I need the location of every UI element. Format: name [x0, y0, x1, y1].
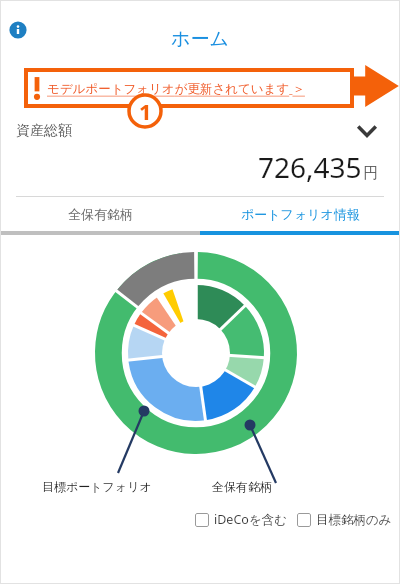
staticText: 円: [363, 164, 378, 183]
staticText: 726,435: [258, 148, 362, 186]
button[interactable]: ポートフォリオ情報: [200, 197, 400, 231]
staticText: ホーム: [171, 27, 229, 51]
button[interactable]: Expand: [352, 116, 382, 146]
staticText: 資産総額: [16, 122, 72, 140]
staticText: 目標銘柄のみ: [316, 512, 392, 528]
button[interactable]: Information: [8, 20, 28, 40]
other: Next: [340, 62, 400, 110]
staticText: 全保有銘柄: [212, 479, 272, 494]
button[interactable]: 全保有銘柄: [0, 197, 200, 231]
button[interactable]: iDeCoを含む: [195, 511, 287, 528]
staticText: 目標ポートフォリオ: [42, 479, 152, 494]
button[interactable]: 目標銘柄のみ: [297, 512, 392, 528]
staticText: ポートフォリオ情報: [241, 206, 360, 222]
staticText: 1: [139, 96, 152, 126]
staticText: 全保有銘柄: [68, 206, 133, 222]
staticText: モデルポートフォリオが更新されています ＞: [47, 80, 305, 97]
button[interactable]: モデルポートフォリオが更新されています ＞: [24, 68, 354, 108]
staticText: iDeCoを含む: [214, 511, 287, 528]
